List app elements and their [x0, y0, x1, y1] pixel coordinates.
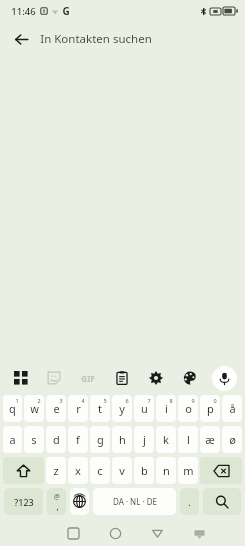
staticText: r [76, 401, 81, 416]
staticText: u [141, 401, 148, 416]
staticText: b [141, 463, 148, 478]
staticText: y [119, 401, 125, 416]
button[interactable]: v [112, 457, 132, 484]
button[interactable]: u [134, 395, 154, 422]
button[interactable]: k [156, 426, 176, 453]
button[interactable]: s [24, 426, 44, 453]
button[interactable]: c [90, 457, 110, 484]
staticText: @ [54, 492, 60, 501]
staticText: k [163, 432, 169, 447]
button[interactable]: Hide keyboard [178, 520, 220, 546]
button[interactable]: i [156, 395, 176, 422]
staticText: G [62, 4, 70, 18]
staticText: x [75, 463, 81, 478]
staticText: o [185, 401, 192, 416]
staticText: q [9, 401, 16, 416]
button[interactable]: Settings [139, 364, 173, 392]
button[interactable]: w [24, 395, 44, 422]
staticText: m [183, 463, 194, 478]
staticText: 4 [81, 397, 85, 404]
button[interactable]: o [178, 395, 198, 422]
staticText: z [53, 463, 59, 478]
staticText: 5 [103, 397, 107, 404]
staticText: 3 [59, 397, 63, 404]
staticText: g [97, 432, 104, 447]
button[interactable]: Clipboard [105, 364, 139, 392]
staticText: DA · NL · DE [113, 496, 157, 507]
button[interactable]: Comma and symbols [47, 488, 66, 515]
button[interactable]: Back [0, 22, 245, 56]
button[interactable]: q [3, 395, 22, 422]
button[interactable]: Backspace [200, 457, 242, 484]
button[interactable]: m [178, 457, 198, 484]
button[interactable]: GIF [71, 364, 105, 392]
button[interactable]: Stickers [37, 364, 71, 392]
staticText: In Kontakten suchen [40, 31, 152, 47]
button[interactable]: h [112, 426, 132, 453]
staticText: n [163, 463, 170, 478]
staticText: s [31, 432, 37, 447]
staticText: 6 [125, 397, 129, 404]
staticText: h [119, 432, 126, 447]
button[interactable]: x [68, 457, 88, 484]
button[interactable]: . [180, 488, 199, 515]
staticText: c [97, 463, 103, 478]
button[interactable]: Home [94, 520, 136, 546]
staticText: 0 [213, 397, 217, 404]
button[interactable]: å [222, 395, 242, 422]
button[interactable]: Voice input [212, 366, 237, 391]
staticText: d [53, 432, 60, 447]
staticText: v [119, 463, 125, 478]
staticText: p [207, 401, 214, 416]
button[interactable]: p [200, 395, 220, 422]
staticText: 11:46 [11, 5, 36, 18]
button[interactable]: t [90, 395, 110, 422]
button[interactable]: ?123 [4, 488, 43, 515]
button[interactable]: d [46, 426, 66, 453]
button[interactable]: Themes [173, 364, 207, 392]
button[interactable]: j [134, 426, 154, 453]
staticText: 8 [169, 397, 173, 404]
button[interactable]: y [112, 395, 132, 422]
staticText: å [229, 401, 236, 416]
button[interactable]: æ [200, 426, 220, 453]
button[interactable]: Shift [3, 457, 44, 484]
button[interactable]: Change language [70, 488, 89, 515]
button[interactable]: Search [203, 488, 241, 515]
button[interactable]: a [3, 426, 22, 453]
staticText: e [53, 401, 60, 416]
button[interactable]: f [68, 426, 88, 453]
staticText: i [165, 401, 168, 416]
staticText: æ [205, 432, 215, 447]
button[interactable]: Recents [53, 520, 94, 546]
staticText: 9 [191, 397, 195, 404]
button[interactable]: e [46, 395, 66, 422]
button[interactable]: z [46, 457, 66, 484]
staticText: GIF [81, 373, 95, 384]
staticText: w [30, 401, 39, 416]
button[interactable]: Apps [4, 364, 37, 392]
button[interactable]: g [90, 426, 110, 453]
staticText: 7 [147, 397, 151, 404]
button[interactable]: r [68, 395, 88, 422]
button[interactable]: ø [222, 426, 242, 453]
staticText: ?123 [14, 496, 34, 508]
staticText: a [9, 432, 16, 447]
button[interactable]: l [178, 426, 198, 453]
button[interactable]: Back [6, 24, 36, 54]
staticText: f [76, 432, 80, 447]
staticText: t [98, 401, 102, 416]
button[interactable]: b [134, 457, 154, 484]
button[interactable]: n [156, 457, 176, 484]
staticText: , [56, 501, 59, 512]
button[interactable]: DA · NL · DE [93, 488, 176, 515]
staticText: . [188, 496, 191, 508]
staticText: ø [229, 432, 236, 447]
staticText: j [143, 432, 146, 447]
staticText: l [187, 432, 190, 447]
staticText: 2 [37, 397, 41, 404]
staticText: 1 [15, 397, 19, 404]
button[interactable]: Back [136, 520, 178, 546]
